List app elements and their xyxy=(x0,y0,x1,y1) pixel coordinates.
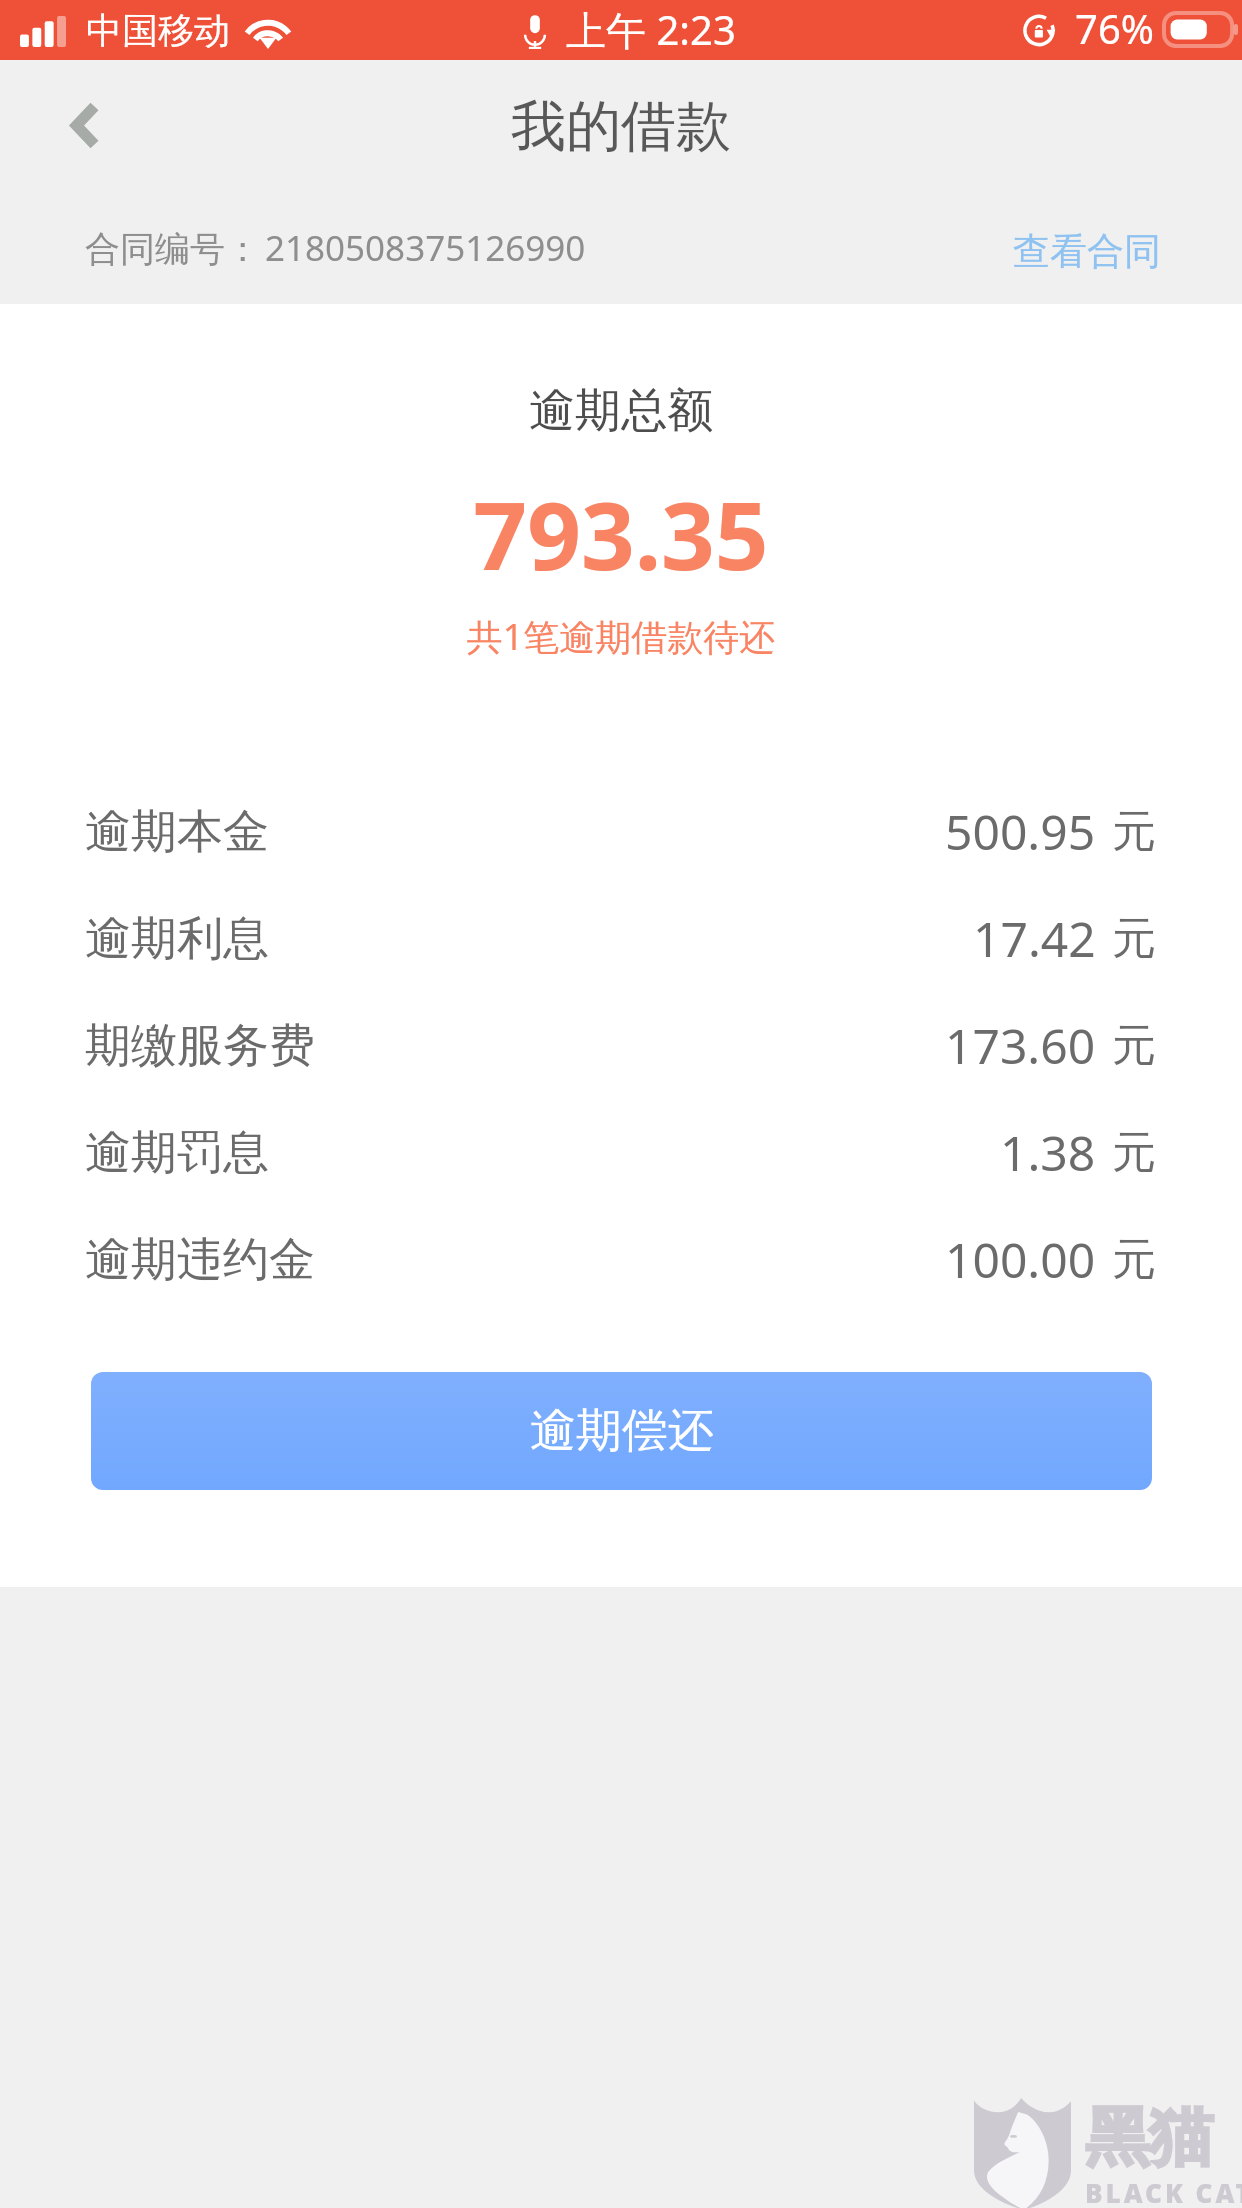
staticText: 元 xyxy=(1112,804,1156,859)
staticText: 共1笔逾期借款待还 xyxy=(0,612,1242,661)
staticText: 17.42 xyxy=(973,906,1096,971)
staticText: 逾期本金 xyxy=(85,803,269,861)
staticText: 黑猫 xyxy=(1085,2097,1213,2178)
staticText: 逾期违约金 xyxy=(85,1231,315,1289)
staticText: 逾期偿还 xyxy=(530,1402,714,1460)
button[interactable]: 逾期违约金 xyxy=(0,1206,1242,1313)
staticText: BLACK CAT xyxy=(1085,2175,1242,2208)
staticText: 元 xyxy=(1112,1018,1156,1073)
staticText: 合同编号： xyxy=(85,227,260,271)
staticText: 元 xyxy=(1112,1232,1156,1287)
staticText: 元 xyxy=(1112,911,1156,966)
staticText: 173.60 xyxy=(945,1013,1096,1078)
staticText: 逾期罚息 xyxy=(85,1124,269,1182)
staticText: 1.38 xyxy=(1000,1120,1096,1185)
staticText: 793.35 xyxy=(0,470,1242,598)
staticText: 逾期总额 xyxy=(0,382,1242,440)
staticText: 期缴服务费 xyxy=(85,1017,315,1075)
button[interactable]: 逾期偿还 xyxy=(91,1372,1152,1490)
button[interactable]: 逾期本金 xyxy=(0,778,1242,885)
staticText: 上午 2:23 xyxy=(566,2,736,57)
staticText: 100.00 xyxy=(945,1227,1096,1292)
button[interactable]: 逾期利息 xyxy=(0,885,1242,992)
staticText: 中国移动 xyxy=(86,8,230,53)
button[interactable]: 期缴服务费 xyxy=(0,992,1242,1099)
button[interactable]: 查看合同 xyxy=(983,196,1242,304)
staticText: 元 xyxy=(1112,1125,1156,1180)
staticText: 2180508375126990 xyxy=(265,224,586,272)
staticText: 500.95 xyxy=(945,799,1096,864)
staticText: 我的借款 xyxy=(511,92,731,161)
staticText: 76% xyxy=(1075,1,1154,55)
button[interactable]: Back xyxy=(0,60,160,196)
button[interactable]: 逾期罚息 xyxy=(0,1099,1242,1206)
staticText: 逾期利息 xyxy=(85,910,269,968)
staticText: 查看合同 xyxy=(1013,228,1161,275)
